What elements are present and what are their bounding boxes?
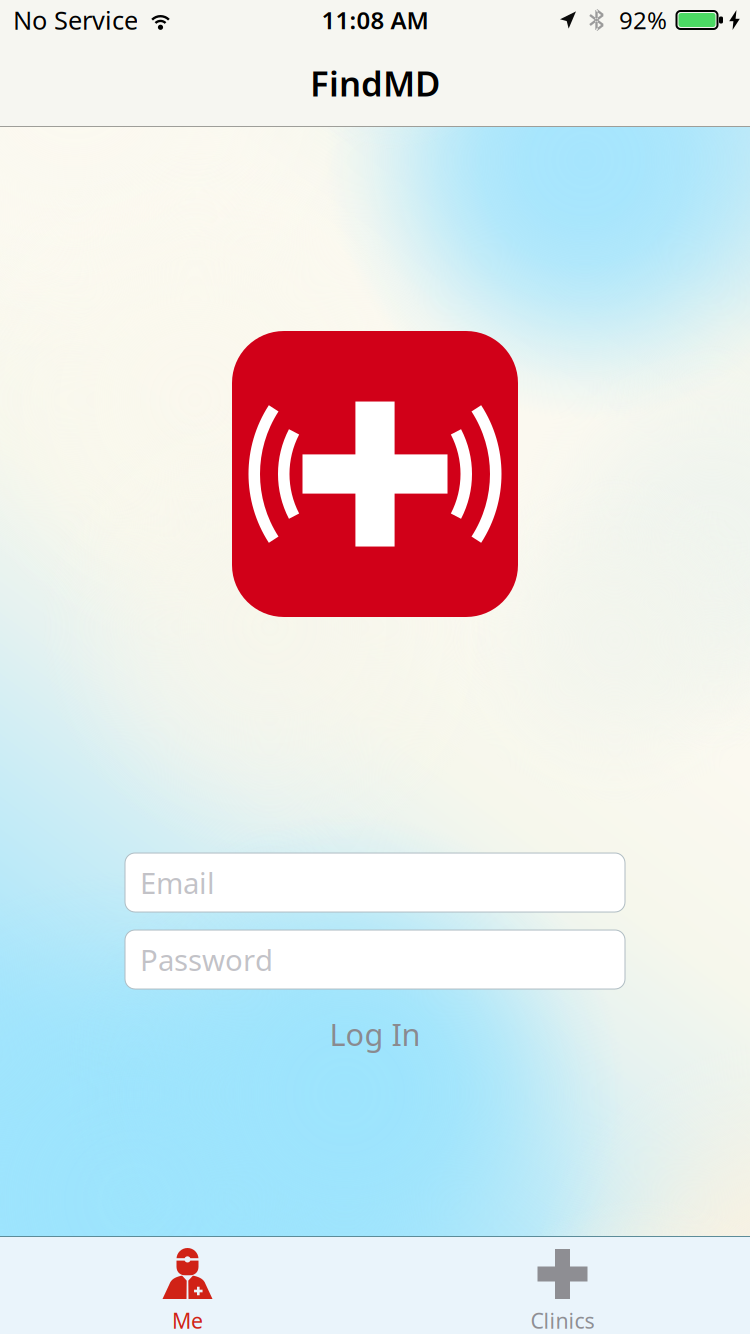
button[interactable]: Me <box>0 1236 375 1334</box>
button[interactable]: Clinics <box>375 1236 750 1334</box>
staticText: FindMD <box>310 60 440 106</box>
button[interactable]: Log In <box>125 989 625 1079</box>
staticText: Password <box>140 940 273 979</box>
staticText: Clinics <box>530 1306 594 1334</box>
staticText: 92% <box>619 4 667 36</box>
staticText: No Service <box>13 3 138 37</box>
staticText: Me <box>172 1306 203 1334</box>
staticText: 11:08 AM <box>321 4 428 36</box>
staticText: Email <box>140 863 215 902</box>
staticText: Log In <box>329 1014 420 1054</box>
